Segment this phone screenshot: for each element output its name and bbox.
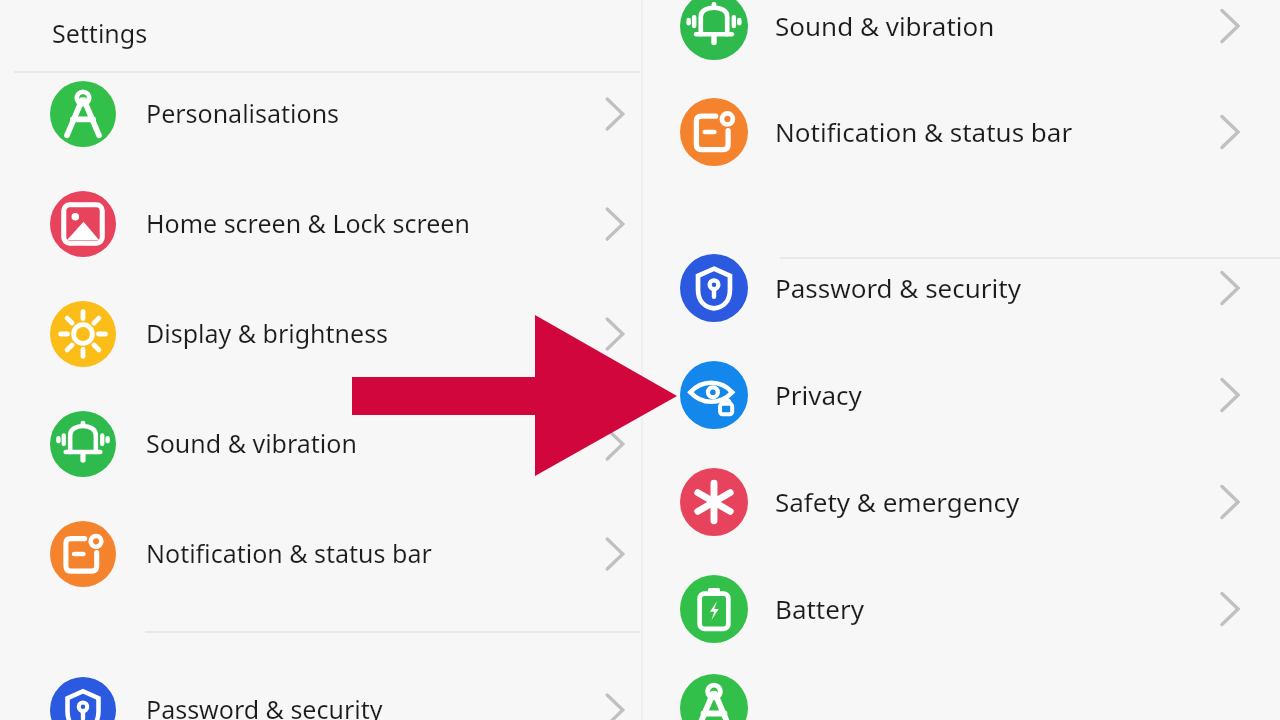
staticText: Safety & emergency xyxy=(775,484,1020,519)
staticText: Password & security xyxy=(775,270,1021,305)
button[interactable]: Password & security xyxy=(14,664,641,720)
button[interactable]: Sound & vibration xyxy=(645,0,1280,71)
button[interactable]: Home screen & Lock screen xyxy=(14,178,641,270)
staticText: Password & security xyxy=(146,692,383,720)
staticText: Settings xyxy=(52,16,148,50)
button[interactable]: Notification & status bar xyxy=(645,87,1280,177)
staticText: Notification & status bar xyxy=(146,536,432,570)
staticText: Sound & vibration xyxy=(146,426,357,460)
staticText: Personalisations xyxy=(146,96,340,130)
staticText: Sound & vibration xyxy=(775,8,995,43)
button[interactable]: Notification & status bar xyxy=(14,508,641,600)
other: Arrow pointing to Privacy xyxy=(352,315,677,476)
button[interactable]: Battery xyxy=(645,564,1280,654)
staticText: Battery xyxy=(775,591,864,626)
button[interactable]: Sound & vibration xyxy=(14,398,641,490)
button[interactable]: Personalisations xyxy=(14,68,641,160)
button[interactable]: Safety & emergency xyxy=(645,457,1280,547)
staticText: Home screen & Lock screen xyxy=(146,206,470,240)
staticText: Privacy xyxy=(775,377,862,412)
staticText: Display & brightness xyxy=(146,316,389,350)
button[interactable]: Display & brightness xyxy=(14,288,641,380)
button[interactable]: Privacy xyxy=(645,350,1280,440)
button[interactable]: Password & security xyxy=(645,243,1280,333)
staticText: Notification & status bar xyxy=(775,114,1073,149)
